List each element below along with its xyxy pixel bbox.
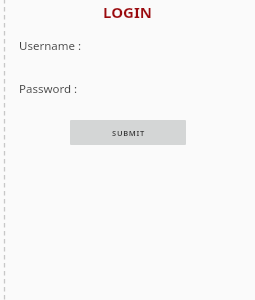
button[interactable]: Username :: [19, 38, 82, 54]
staticText: LOGIN: [0, 2, 255, 22]
button[interactable]: Password :: [19, 81, 78, 97]
staticText: SUBMIT: [112, 128, 145, 138]
staticText: Password :: [19, 81, 78, 97]
staticText: Username :: [19, 38, 82, 54]
button[interactable]: SUBMIT: [70, 120, 186, 145]
